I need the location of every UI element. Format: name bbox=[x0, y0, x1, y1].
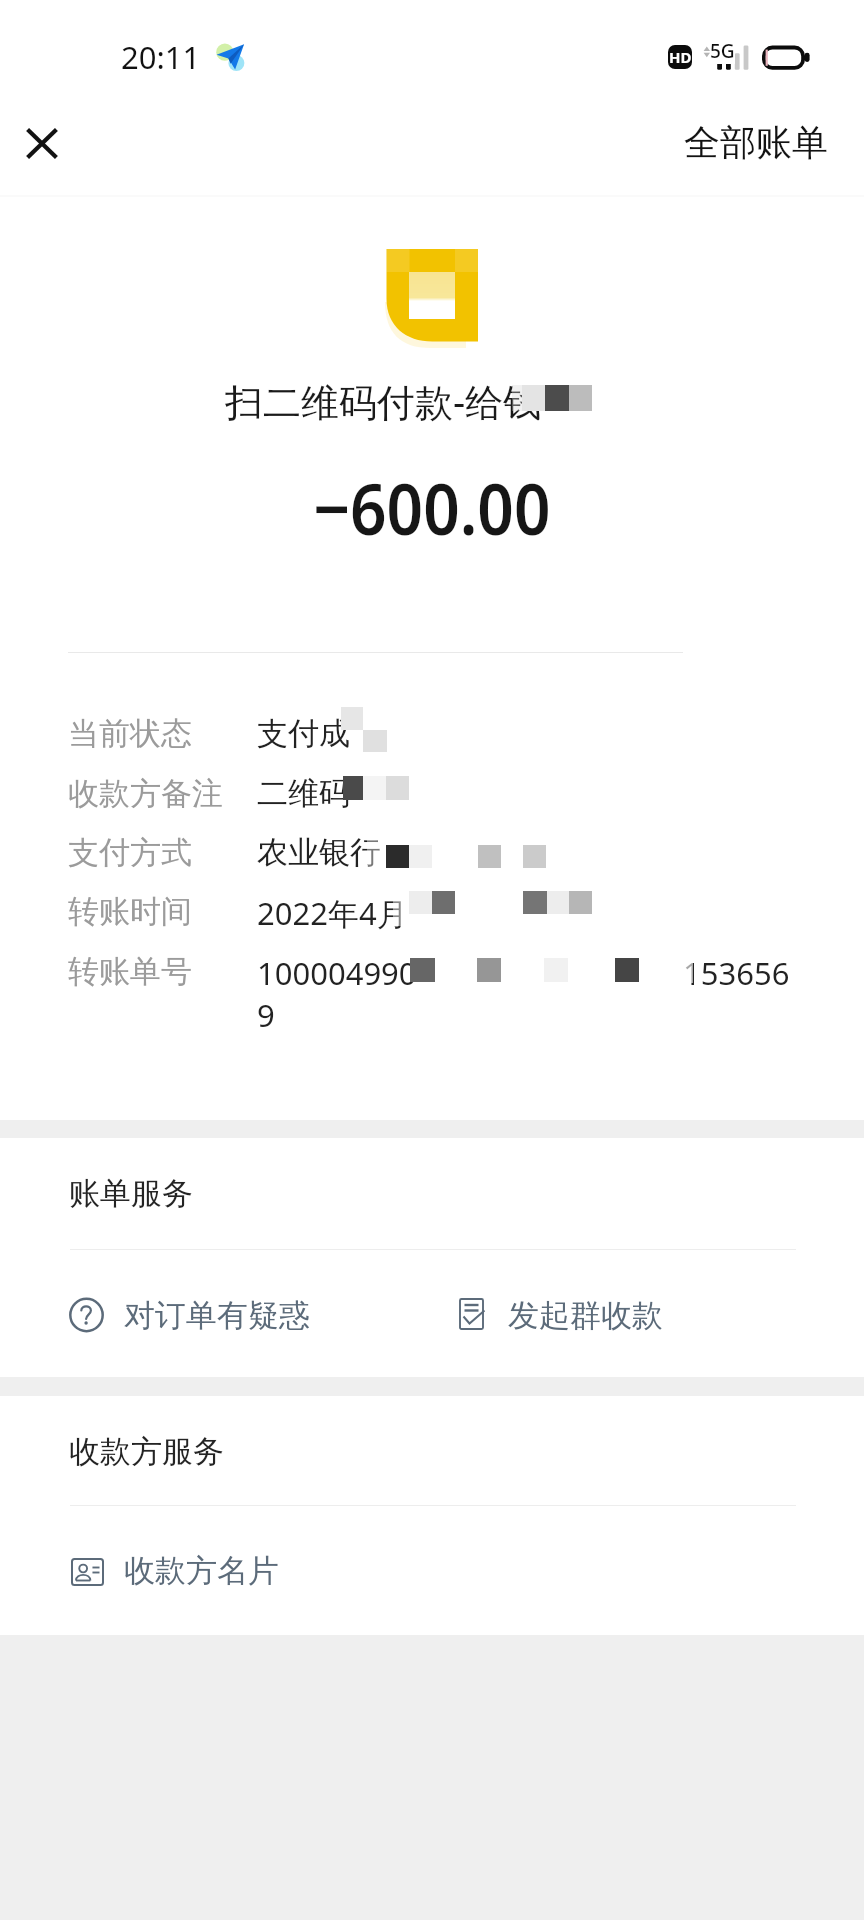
button[interactable]: 对订单有疑惑 bbox=[68, 1285, 310, 1345]
staticText: 9 bbox=[257, 994, 275, 1036]
staticText: 对订单有疑惑 bbox=[124, 1296, 310, 1335]
staticText: 转账单号 bbox=[68, 952, 192, 991]
staticText: HD bbox=[669, 47, 692, 67]
button[interactable]: Close bbox=[12, 113, 72, 173]
staticText: 支付成 bbox=[257, 714, 350, 753]
staticText: 153656 bbox=[683, 952, 790, 994]
staticText: 转账时间 bbox=[68, 892, 192, 931]
staticText: 支付方式 bbox=[68, 833, 192, 872]
staticText: 100004990 bbox=[257, 952, 417, 994]
staticText: 20:11 bbox=[121, 36, 201, 78]
staticText: −600.00 bbox=[313, 459, 551, 556]
button[interactable]: 收款方名片 bbox=[68, 1540, 279, 1600]
staticText: 收款方备注 bbox=[68, 774, 223, 813]
staticText: 账单服务 bbox=[69, 1174, 193, 1213]
button[interactable]: 全部账单 bbox=[668, 110, 844, 175]
button[interactable]: 发起群收款 bbox=[452, 1285, 663, 1345]
staticText: 2022年4月 bbox=[257, 892, 408, 934]
staticText: 农业银行 bbox=[257, 833, 381, 872]
staticText: 收款方服务 bbox=[69, 1432, 224, 1471]
staticText: 扫二维码付款-给钱 bbox=[225, 375, 542, 427]
staticText: 5G bbox=[710, 38, 735, 64]
staticText: 收款方名片 bbox=[124, 1551, 279, 1590]
staticText: 发起群收款 bbox=[508, 1296, 663, 1335]
staticText: 全部账单 bbox=[684, 120, 828, 165]
staticText: 当前状态 bbox=[68, 714, 192, 753]
staticText: 二维码 bbox=[257, 774, 350, 813]
